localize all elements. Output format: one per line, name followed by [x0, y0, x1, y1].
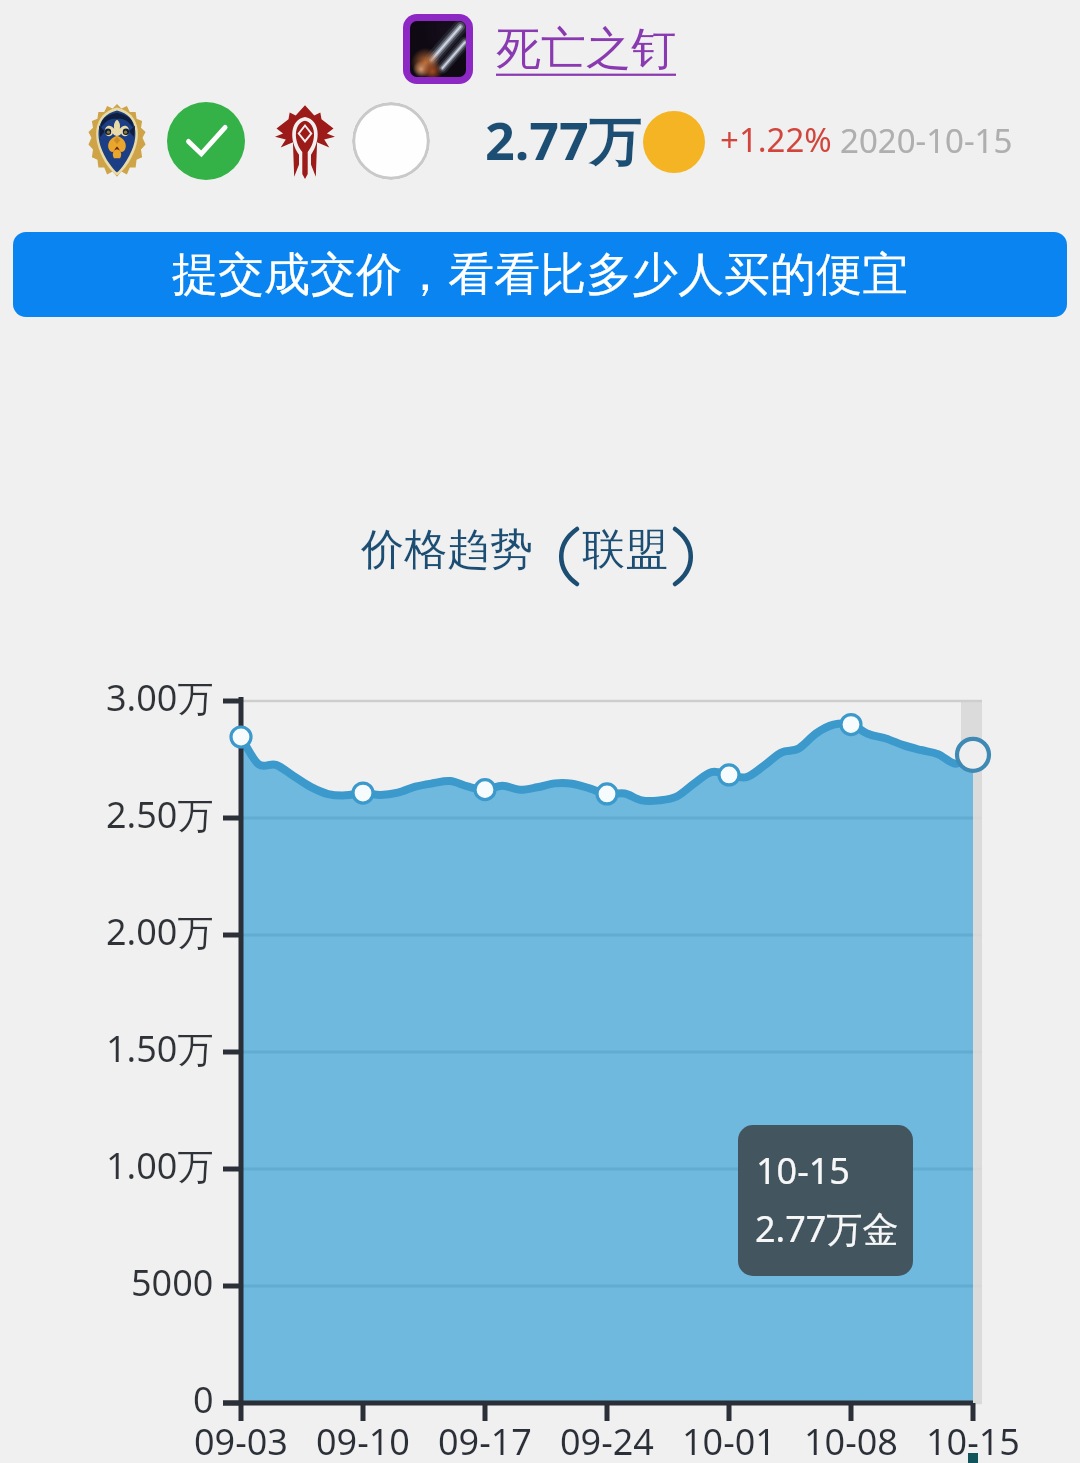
- button[interactable]: Horde: [275, 103, 335, 179]
- staticText: 1.50万: [106, 1024, 214, 1073]
- button[interactable]: Alliance: [88, 104, 146, 176]
- button[interactable]: 提交成交价，看看比多少人买的便宜: [13, 232, 1067, 317]
- staticText: 5000: [131, 1258, 214, 1307]
- staticText: 10-15: [756, 1146, 850, 1195]
- staticText: 2.00万: [106, 907, 214, 956]
- staticText: 2.50万: [106, 790, 214, 839]
- staticText: 价格趋势: [361, 523, 533, 577]
- staticText: 09-17: [438, 1417, 532, 1463]
- staticText: 09-24: [560, 1417, 654, 1463]
- staticText: +1.22%: [720, 117, 832, 162]
- button[interactable]: 10-15: [738, 1125, 913, 1276]
- staticText: 提交成交价，看看比多少人买的便宜: [172, 246, 908, 304]
- staticText: 09-03: [194, 1417, 288, 1463]
- button[interactable]: 死亡之钉: [496, 21, 676, 78]
- staticText: 联盟: [582, 523, 668, 577]
- staticText: 09-10: [316, 1417, 410, 1463]
- staticText: 3.00万: [106, 673, 214, 722]
- staticText: 2.77万: [485, 104, 641, 175]
- staticText: 2020-10-15: [840, 118, 1013, 163]
- staticText: 10-15: [926, 1417, 1020, 1463]
- staticText: 10-01: [682, 1417, 776, 1463]
- staticText: 1.00万: [106, 1141, 214, 1190]
- staticText: 10-08: [804, 1417, 898, 1463]
- button[interactable]: Horde unselected: [352, 102, 430, 180]
- button[interactable]: Alliance selected: [167, 102, 245, 180]
- button[interactable]: Item icon: [403, 14, 473, 84]
- staticText: 2.77万金: [755, 1204, 899, 1253]
- staticText: 0: [193, 1375, 214, 1424]
